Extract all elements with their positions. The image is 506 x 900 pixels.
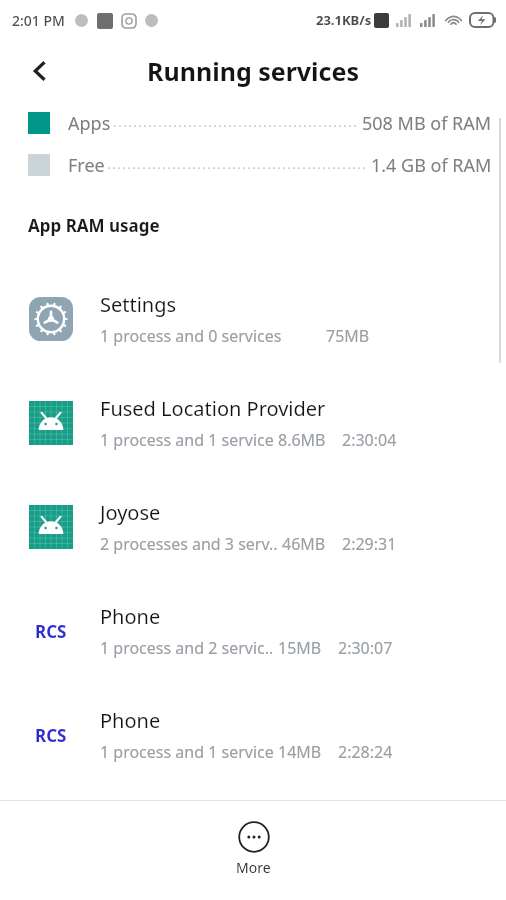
staticText: Fused Location Provider (100, 395, 326, 422)
staticText: 2:30:07 (338, 637, 393, 659)
staticText: 1.4 GB of RAM (371, 153, 492, 178)
staticText: 1 process and 1 service (100, 429, 274, 451)
button[interactable]: Free (0, 144, 506, 186)
staticText: 508 MB of RAM (362, 111, 492, 136)
button[interactable]: RCS (0, 683, 506, 787)
staticText: 14MB (278, 741, 322, 763)
button[interactable]: Joyose (0, 475, 506, 579)
staticText: 2:29:31 (342, 533, 397, 555)
staticText: Phone (100, 603, 161, 630)
button[interactable]: More (214, 817, 293, 881)
staticText: 2:01 PM (12, 11, 65, 30)
staticText: Free (68, 153, 105, 178)
staticText: Settings (100, 291, 177, 318)
staticText: RCS (35, 724, 67, 747)
staticText: 75MB (326, 325, 370, 347)
button[interactable]: Back (16, 47, 64, 95)
staticText: Phone (100, 707, 161, 734)
staticText: 2 processes and 3 serv.. (100, 533, 278, 555)
staticText: Joyose (100, 499, 161, 526)
staticText: 8.6MB (278, 429, 326, 451)
staticText: 23.1KB/s (316, 11, 372, 29)
staticText: 15MB (278, 637, 322, 659)
staticText: 2:30:04 (342, 429, 397, 451)
staticText: 1 process and 2 servic.. (100, 637, 274, 659)
button[interactable]: Settings (0, 267, 506, 371)
staticText: RCS (35, 620, 67, 643)
staticText: 1 process and 0 services (100, 325, 282, 347)
staticText: Running services (147, 54, 359, 88)
staticText: 1 process and 1 service (100, 741, 274, 763)
staticText: 2:28:24 (338, 741, 393, 763)
staticText: 46MB (282, 533, 326, 555)
staticText: Apps (68, 111, 111, 136)
staticText: App RAM usage (28, 214, 160, 237)
button[interactable]: Apps (0, 102, 506, 144)
button[interactable]: Fused Location Provider (0, 371, 506, 475)
button[interactable]: RCS (0, 579, 506, 683)
staticText: More (236, 858, 271, 877)
